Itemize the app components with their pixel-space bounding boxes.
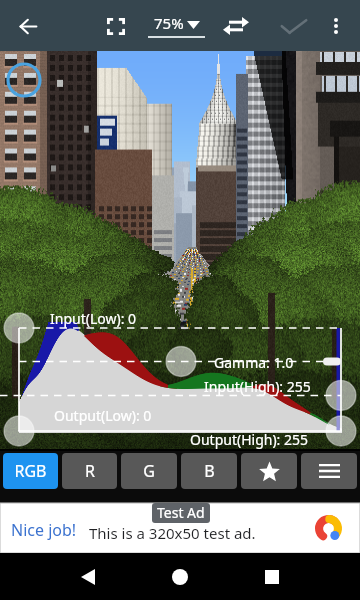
button[interactable]: B [181,453,237,489]
staticText: RGB [14,460,47,482]
staticText: R [85,460,95,482]
staticText: Test Ad [157,503,205,522]
button[interactable]: Recent apps [252,557,292,597]
button[interactable]: More options [314,4,358,48]
staticText: Input(High): 255 [204,377,311,396]
button[interactable]: Favorites [241,453,297,489]
button[interactable]: R [62,453,117,489]
button[interactable]: RGB [3,453,58,489]
staticText: Nice job! [11,519,77,541]
button[interactable]: Nice job! [0,503,360,553]
button[interactable]: 75% [146,4,208,46]
staticText: Output(High): 255 [190,430,309,449]
staticText: Output(Low): 0 [54,406,152,425]
staticText: Input(Low): 0 [50,309,137,328]
button[interactable]: Home [160,557,200,597]
button[interactable]: Menu [301,453,357,489]
button[interactable]: Fit to screen [94,4,138,48]
button[interactable]: Back [68,557,108,597]
staticText: Gamma: 1.0 [214,353,294,372]
image: Photo being edited [0,51,360,449]
button[interactable]: G [121,453,177,489]
staticText: G [143,460,155,482]
button[interactable]: Back [6,4,50,48]
staticText: B [204,460,215,482]
button[interactable]: Apply [272,4,316,48]
button[interactable]: Compare before and after [214,4,258,48]
staticText: This is a 320x50 test ad. [89,523,256,543]
staticText: 75% [154,13,184,33]
